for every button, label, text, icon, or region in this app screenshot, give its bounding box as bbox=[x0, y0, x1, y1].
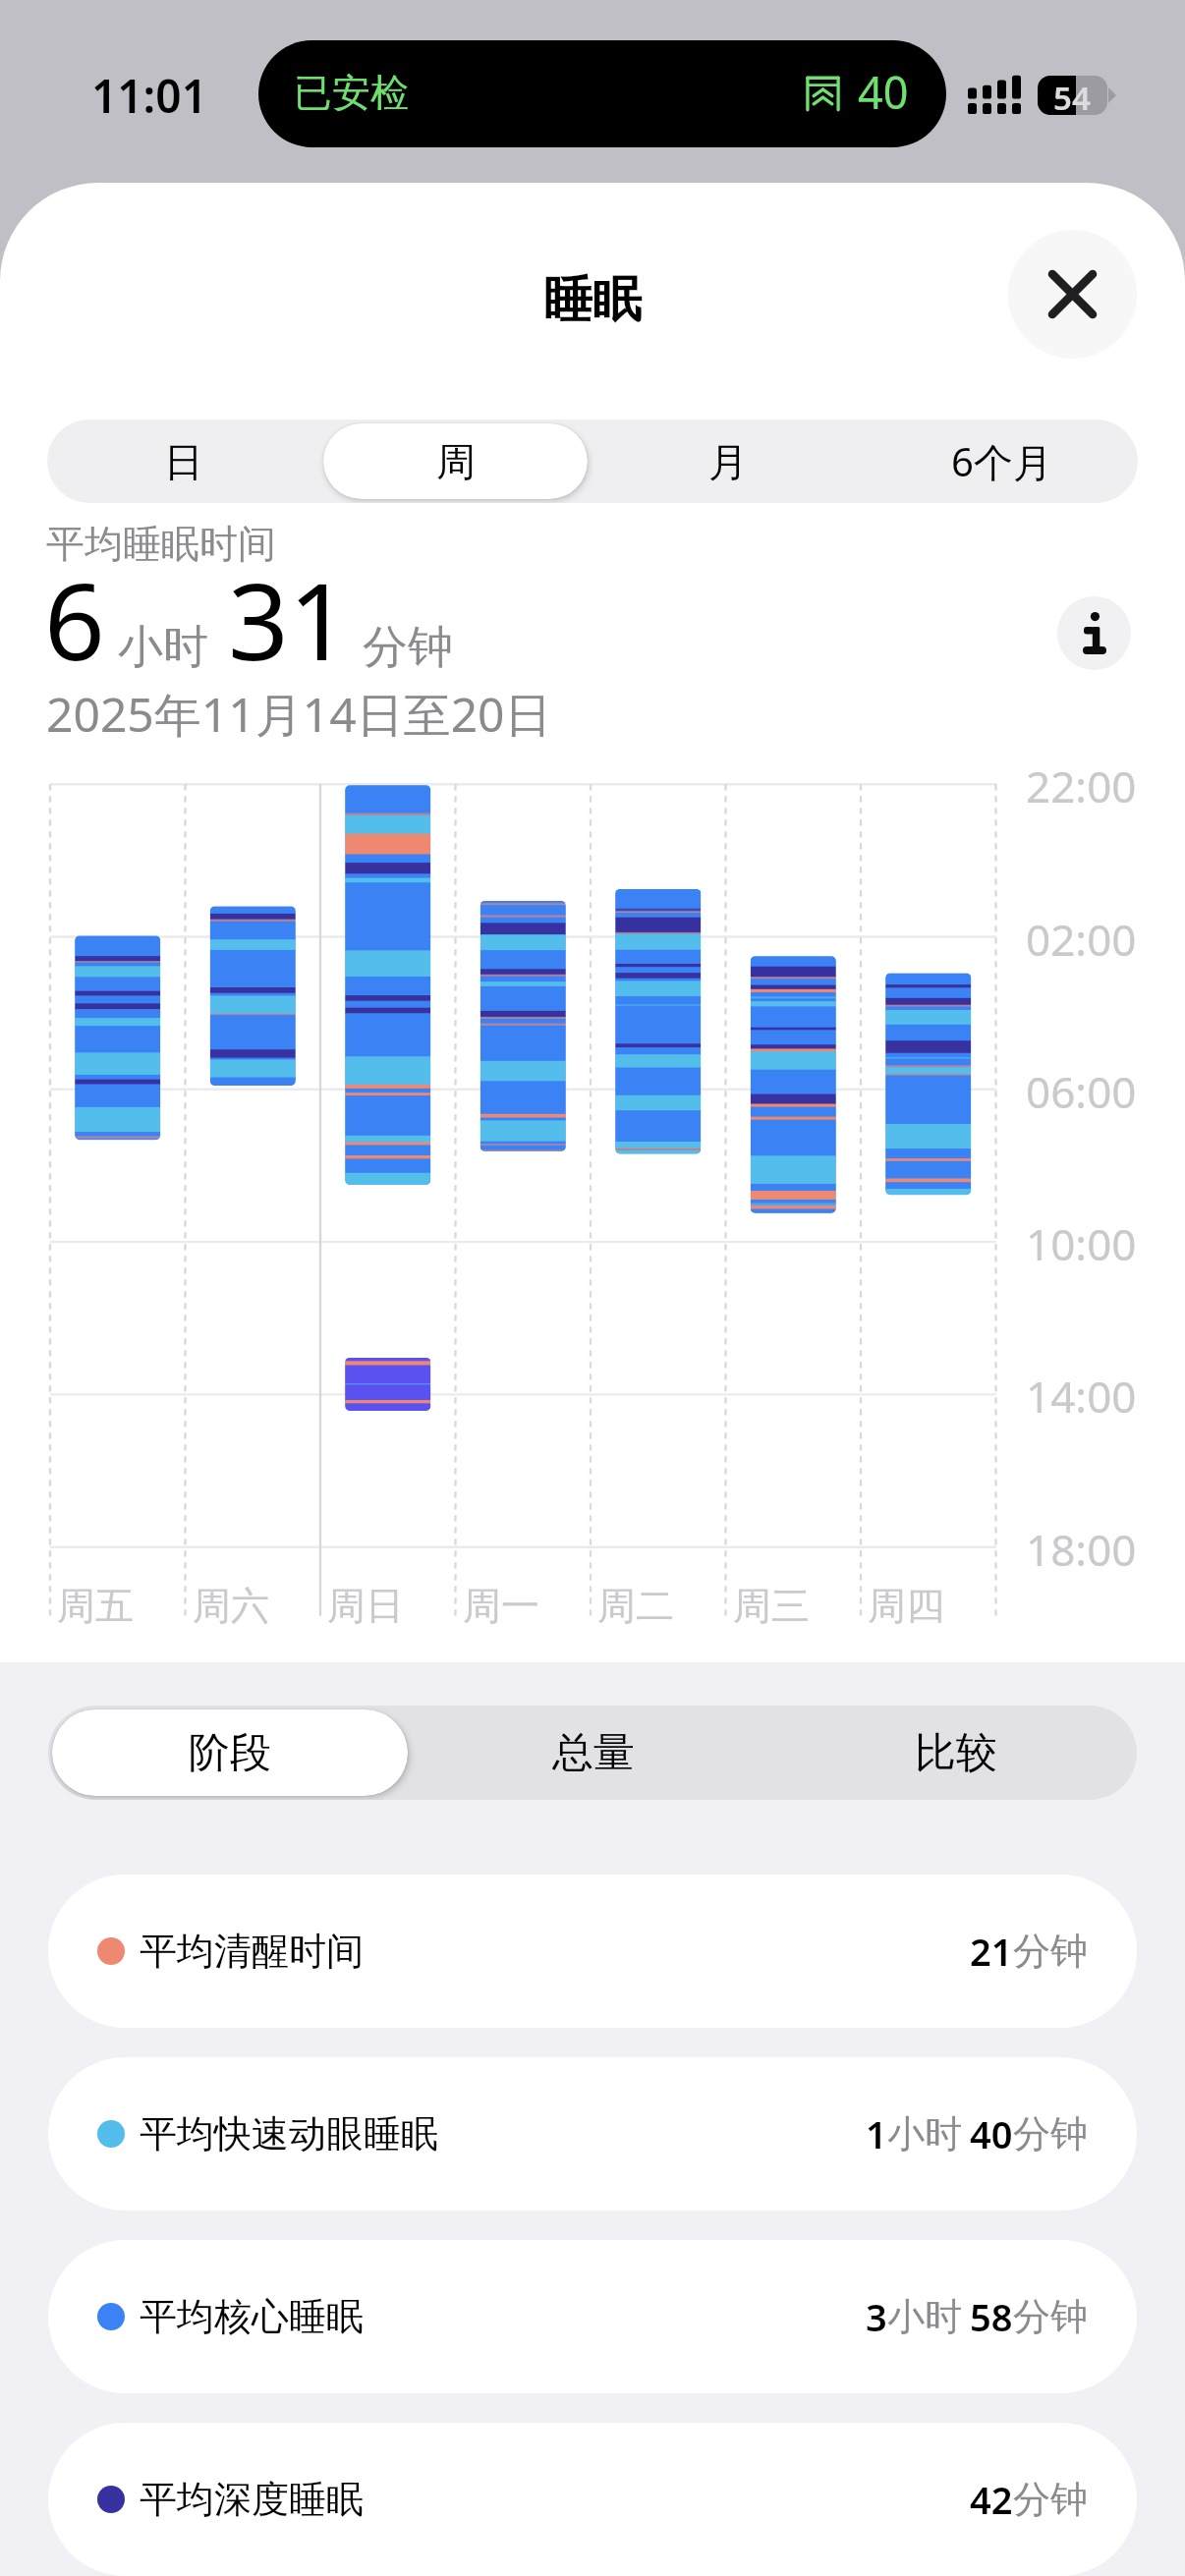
staticText: 周三 bbox=[733, 1582, 810, 1630]
button[interactable]: 信息 bbox=[1057, 596, 1131, 670]
staticText: 31 bbox=[228, 547, 350, 692]
staticText: 6个月 bbox=[951, 434, 1052, 488]
staticText: 21 bbox=[970, 1926, 1013, 1977]
staticText: 比较 bbox=[915, 1727, 997, 1779]
staticText: 平均睡眠时间 bbox=[46, 520, 276, 568]
staticText: 周二 bbox=[597, 1582, 674, 1630]
staticText: 22:00 bbox=[1026, 756, 1137, 815]
staticText: 2025年11月14日至20日 bbox=[46, 682, 552, 747]
button[interactable]: 平均核心睡眠 bbox=[48, 2240, 1137, 2393]
button[interactable]: 阶段 bbox=[52, 1709, 408, 1796]
staticText: 3 bbox=[866, 2291, 887, 2342]
staticText: 小时 bbox=[887, 2110, 962, 2157]
staticText: 分钟 bbox=[1013, 1928, 1088, 1975]
staticText: 18:00 bbox=[1026, 1520, 1137, 1579]
staticText: 周一 bbox=[463, 1582, 539, 1630]
button[interactable]: 平均深度睡眠 bbox=[48, 2423, 1137, 2576]
staticText: 周 bbox=[436, 437, 476, 486]
staticText: 10:00 bbox=[1026, 1214, 1137, 1273]
staticText: 11:01 bbox=[91, 65, 207, 127]
button[interactable]: 月 bbox=[595, 423, 861, 499]
staticText: 周五 bbox=[57, 1582, 134, 1630]
staticText: 平均深度睡眠 bbox=[140, 2476, 364, 2523]
staticText: 06:00 bbox=[1026, 1062, 1137, 1121]
staticText: 周四 bbox=[868, 1582, 944, 1630]
staticText: 分钟 bbox=[1013, 2110, 1088, 2157]
staticText: 54 bbox=[1053, 76, 1091, 115]
button[interactable]: 6个月 bbox=[869, 423, 1134, 499]
staticText: 分钟 bbox=[1013, 2476, 1088, 2523]
button[interactable]: 比较 bbox=[778, 1709, 1133, 1796]
staticText: 周日 bbox=[327, 1582, 404, 1630]
button[interactable]: 关闭 bbox=[1008, 230, 1137, 359]
staticText: 日 bbox=[164, 437, 203, 486]
staticText: 周六 bbox=[193, 1582, 269, 1630]
staticText: 小时 bbox=[887, 2293, 962, 2340]
staticText: 分钟 bbox=[1013, 2293, 1088, 2340]
staticText: 平均清醒时间 bbox=[140, 1928, 364, 1975]
staticText: 平均快速动眼睡眠 bbox=[140, 2110, 438, 2157]
staticText: 月 bbox=[708, 437, 748, 486]
staticText: 平均核心睡眠 bbox=[140, 2293, 364, 2340]
staticText: 总量 bbox=[552, 1727, 635, 1779]
button[interactable]: 周 bbox=[323, 423, 588, 499]
staticText: 分钟 bbox=[363, 619, 453, 676]
staticText: 02:00 bbox=[1026, 910, 1137, 969]
staticText: 阶段 bbox=[189, 1727, 271, 1779]
staticText: 58 bbox=[970, 2291, 1013, 2342]
staticText: 6 bbox=[44, 547, 105, 692]
staticText: 已安检 bbox=[294, 69, 409, 117]
staticText: 42 bbox=[970, 2474, 1013, 2525]
staticText: 小时 bbox=[118, 619, 208, 676]
staticText: 睡眠 bbox=[543, 269, 642, 331]
staticText: 40 bbox=[970, 2108, 1013, 2159]
staticText: 40 bbox=[858, 62, 909, 122]
button[interactable]: 平均快速动眼睡眠 bbox=[48, 2057, 1137, 2211]
button[interactable]: 日 bbox=[51, 423, 315, 499]
button[interactable]: 平均清醒时间 bbox=[48, 1875, 1137, 2028]
staticText: 14:00 bbox=[1026, 1367, 1137, 1426]
staticText: 1 bbox=[866, 2108, 887, 2159]
button[interactable]: 总量 bbox=[416, 1709, 770, 1796]
